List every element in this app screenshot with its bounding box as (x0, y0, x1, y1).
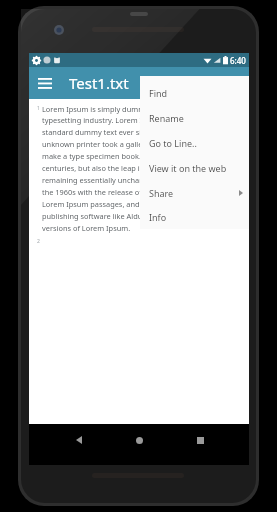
button[interactable]: Open navigation drawer (29, 67, 61, 99)
button[interactable]: Go to Line.. (140, 130, 249, 155)
staticText: Test1.txt (69, 73, 129, 93)
staticText: Rename (149, 112, 184, 124)
button[interactable]: Recent apps (189, 429, 211, 451)
staticText: 1 (37, 105, 40, 112)
staticText: View it on the web (149, 162, 227, 174)
button[interactable]: Home (128, 429, 150, 451)
staticText: Find (149, 87, 168, 99)
staticText: Go to Line.. (149, 137, 197, 149)
staticText: 2 (37, 238, 40, 245)
button[interactable]: View it on the web (140, 155, 249, 180)
staticText: Share (149, 187, 174, 199)
staticText: Lorem Ipsum is simply dummy text of the … (42, 104, 245, 233)
button[interactable]: Share (140, 180, 249, 205)
button[interactable]: Info (140, 205, 249, 229)
button[interactable]: Find (140, 80, 249, 105)
staticText: Info (149, 211, 167, 223)
staticText: 6:40 (230, 55, 246, 66)
button[interactable]: Rename (140, 105, 249, 130)
button[interactable]: Back (68, 429, 90, 451)
